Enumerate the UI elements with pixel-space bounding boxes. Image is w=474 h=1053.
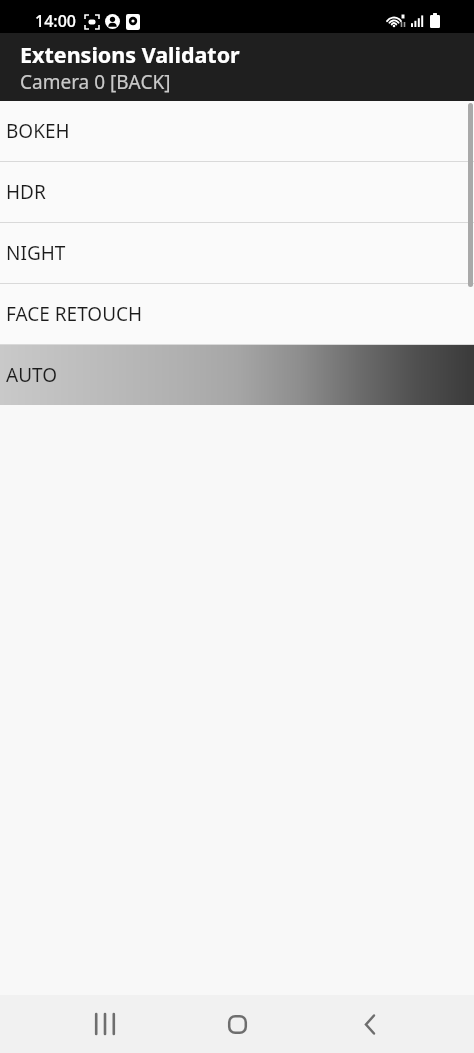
button[interactable]: AUTO <box>0 345 474 405</box>
staticText: BOKEH <box>6 118 70 144</box>
button[interactable] <box>346 1000 394 1048</box>
button[interactable] <box>213 1000 261 1048</box>
staticText: NIGHT <box>6 240 66 266</box>
staticText: HDR <box>6 179 46 205</box>
staticText: Extensions Validator <box>20 40 240 69</box>
staticText: FACE RETOUCH <box>6 301 143 327</box>
button[interactable]: NIGHT <box>0 223 474 283</box>
staticText: Camera 0 [BACK] <box>20 69 171 95</box>
button[interactable]: HDR <box>0 162 474 222</box>
staticText: 14:00 <box>35 10 76 32</box>
button[interactable]: FACE RETOUCH <box>0 284 474 344</box>
button[interactable]: BOKEH <box>0 101 474 161</box>
button[interactable] <box>81 1000 129 1048</box>
staticText: AUTO <box>6 362 58 388</box>
